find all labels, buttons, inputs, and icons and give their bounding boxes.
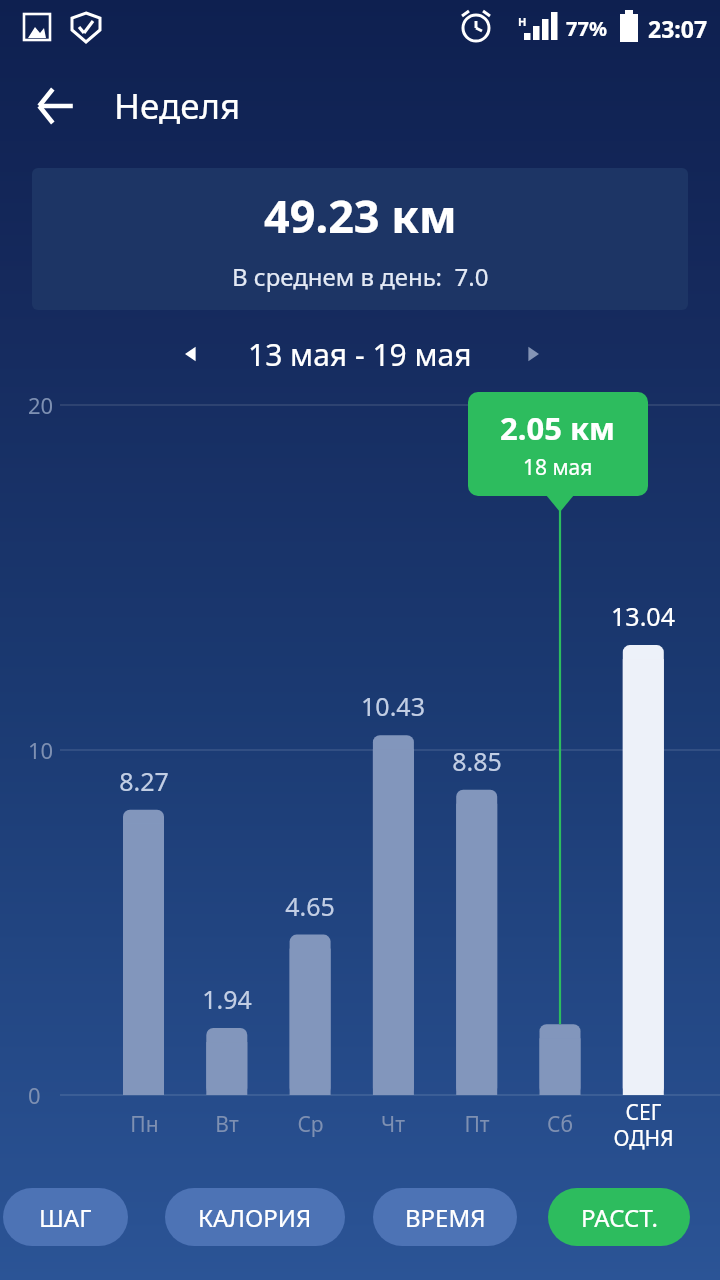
staticText: Ср [297, 1110, 324, 1139]
staticText: ВРЕМЯ [405, 1201, 486, 1234]
staticText: 18 мая [523, 453, 593, 482]
staticText: РАССТ. [581, 1201, 658, 1234]
staticText: 20 [28, 390, 54, 420]
button[interactable]: Previous week [168, 332, 212, 376]
staticText: В среднем в день: 7.0 [232, 260, 489, 293]
button[interactable]: Back [24, 74, 88, 138]
button[interactable]: 49.23 км [32, 168, 688, 310]
staticText: 8.27 [119, 764, 169, 798]
button[interactable]: 13 мая - 19 мая [240, 334, 480, 375]
staticText: КАЛОРИЯ [198, 1201, 312, 1234]
staticText: H [518, 14, 527, 29]
staticText: 2.05 км [500, 407, 616, 449]
button[interactable]: 2.05 км [468, 392, 648, 496]
staticText: Сб [547, 1110, 573, 1139]
staticText: 77% [566, 15, 607, 42]
staticText: Пн [130, 1110, 159, 1139]
button[interactable]: ШАГ [3, 1188, 128, 1246]
staticText: Чт [381, 1110, 405, 1139]
staticText: Неделя [114, 82, 241, 130]
staticText: ШАГ [39, 1201, 92, 1234]
staticText: 10 [28, 735, 54, 765]
button[interactable]: КАЛОРИЯ [165, 1188, 345, 1246]
staticText: 1.94 [202, 982, 252, 1016]
staticText: 10.43 [361, 689, 425, 723]
staticText: 8.85 [452, 744, 502, 778]
staticText: Пт [464, 1110, 490, 1139]
staticText: СЕГ ОДНЯ [613, 1098, 674, 1153]
staticText: 0 [28, 1080, 41, 1110]
staticText: 13.04 [611, 599, 675, 633]
button[interactable]: ВРЕМЯ [373, 1188, 517, 1246]
button[interactable]: РАССТ. [548, 1188, 690, 1246]
button[interactable]: Next week [512, 332, 556, 376]
staticText: Вт [215, 1110, 239, 1139]
staticText: 4.65 [285, 889, 335, 923]
staticText: 49.23 км [264, 185, 457, 246]
staticText: 23:07 [648, 13, 708, 44]
staticText: 13 мая - 19 мая [248, 334, 472, 375]
